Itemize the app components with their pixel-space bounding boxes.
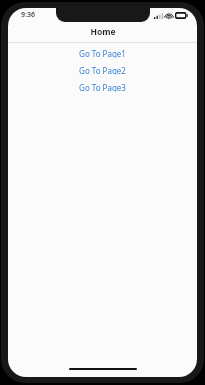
- staticText: Go To Page3: [79, 82, 126, 92]
- staticText: Go To Page2: [79, 65, 126, 75]
- button[interactable]: Go To Page3: [8, 82, 197, 92]
- staticText: Home: [90, 26, 116, 38]
- button[interactable]: Go To Page2: [8, 65, 197, 75]
- button[interactable]: Go To Page1: [8, 48, 197, 58]
- staticText: Go To Page1: [79, 48, 126, 58]
- staticText: 9:36: [21, 10, 35, 20]
